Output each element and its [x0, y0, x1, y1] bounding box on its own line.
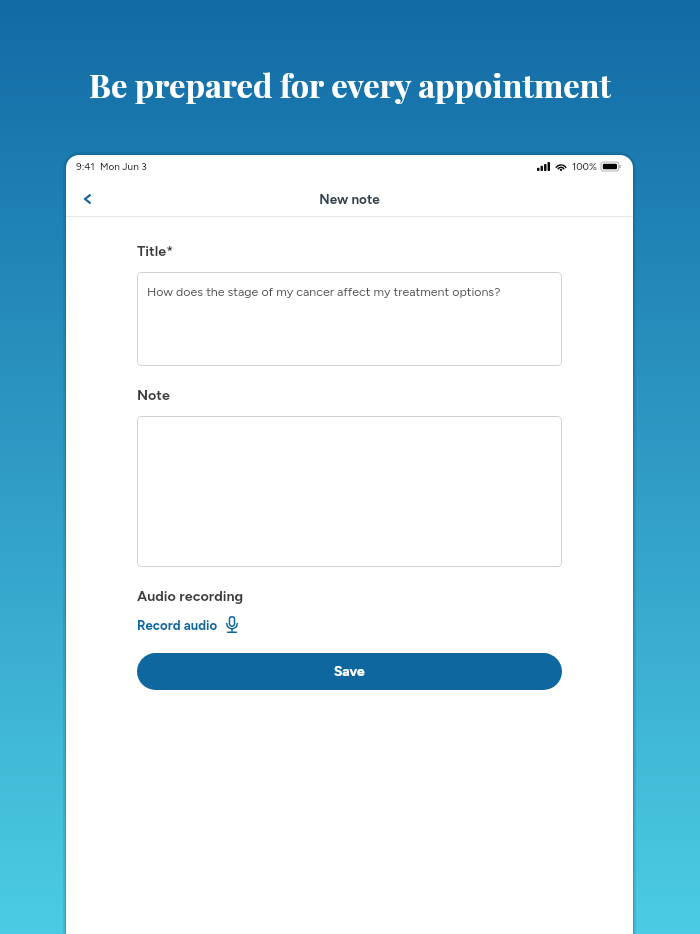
staticText: Note: [137, 386, 170, 403]
staticText: Save: [334, 663, 365, 680]
staticText: 100%: [572, 160, 597, 172]
staticText: 9:41: [76, 160, 95, 172]
button[interactable]: [137, 416, 562, 567]
staticText: Mon Jun 3: [100, 160, 147, 172]
button[interactable]: Save: [137, 653, 562, 690]
button[interactable]: How does the stage of my cancer affect m…: [137, 272, 562, 366]
staticText: Record audio: [137, 617, 218, 633]
button[interactable]: Record audio: [137, 616, 238, 633]
staticText: Audio recording: [137, 587, 244, 604]
staticText: Be prepared for every appointment: [0, 63, 700, 106]
staticText: Title*: [137, 242, 174, 259]
staticText: How does the stage of my cancer affect m…: [147, 284, 501, 299]
staticText: New note: [66, 191, 633, 207]
button[interactable]: Back: [70, 181, 105, 216]
